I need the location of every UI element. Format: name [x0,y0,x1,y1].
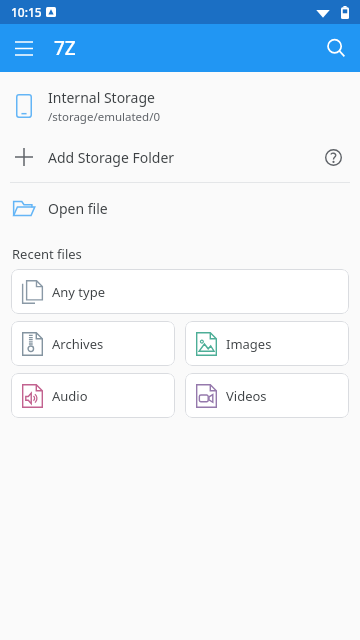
staticText: Audio [52,387,88,405]
staticText: Internal Storage [48,88,155,107]
staticText: Add Storage Folder [48,148,316,167]
staticText: Videos [226,387,267,405]
button[interactable]: Help [316,140,350,174]
button[interactable]: Any type [11,269,349,314]
button[interactable]: Search [317,29,355,67]
button[interactable]: Videos [185,373,349,418]
staticText: 10:15 [11,4,42,20]
button[interactable]: Archives [11,321,175,366]
staticText: 7Z [54,35,76,61]
button[interactable]: Open file [0,183,360,233]
staticText: Recent files [12,245,82,263]
button[interactable]: Open navigation menu [6,30,42,66]
staticText: Images [226,335,272,353]
staticText: /storage/emulated/0 [48,109,161,125]
button[interactable]: Internal Storage [0,80,360,132]
staticText: Any type [52,283,106,301]
staticText: Open file [48,199,108,218]
staticText: Archives [52,335,104,353]
button[interactable]: Add Storage Folder [0,132,360,182]
button[interactable]: Audio [11,373,175,418]
button[interactable]: Images [185,321,349,366]
